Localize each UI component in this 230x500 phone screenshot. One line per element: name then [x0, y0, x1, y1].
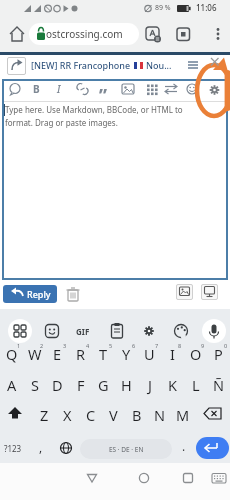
button[interactable]: K: [161, 374, 184, 395]
staticText: T: [99, 344, 108, 364]
staticText: F: [77, 375, 85, 395]
button[interactable]: M: [171, 404, 194, 425]
button[interactable]: V: [102, 404, 125, 425]
button[interactable]: [106, 320, 128, 342]
staticText: 4: [86, 342, 90, 349]
staticText: I: [170, 344, 175, 364]
staticText: GIF: [76, 326, 90, 337]
button[interactable]: D: [46, 374, 69, 395]
button[interactable]: F: [69, 374, 92, 395]
staticText: K: [168, 375, 177, 395]
staticText: R: [76, 344, 86, 364]
button[interactable]: C: [79, 404, 102, 425]
button[interactable]: Reply: [3, 285, 57, 303]
button[interactable]: [8, 319, 32, 343]
staticText: format. Drag or paste images.: [5, 117, 118, 128]
button[interactable]: [29, 23, 139, 45]
button[interactable]: [3, 404, 29, 425]
button[interactable]: [73, 81, 91, 98]
staticText: E: [53, 344, 62, 364]
button[interactable]: [205, 81, 223, 98]
staticText: L: [192, 375, 200, 395]
staticText: O: [190, 344, 202, 364]
button[interactable]: [162, 81, 180, 98]
staticText: ”: [99, 83, 108, 108]
button[interactable]: P: [207, 343, 230, 364]
button[interactable]: [177, 467, 199, 489]
button[interactable]: [202, 319, 226, 343]
button[interactable]: Ñ: [207, 374, 230, 395]
staticText: Z: [40, 405, 49, 425]
staticText: ?123: [4, 443, 22, 454]
button[interactable]: [119, 81, 137, 98]
button[interactable]: [201, 404, 227, 425]
button[interactable]: Q: [0, 343, 23, 364]
button[interactable]: [50, 81, 68, 98]
button[interactable]: [81, 467, 103, 489]
button[interactable]: [56, 437, 76, 459]
staticText: 9: [201, 342, 205, 349]
staticText: A: [7, 375, 17, 395]
staticText: N: [154, 405, 166, 425]
button[interactable]: [196, 437, 229, 459]
button[interactable]: [201, 284, 218, 300]
staticText: H: [121, 375, 132, 395]
staticText: B: [132, 405, 142, 425]
staticText: M: [176, 405, 190, 425]
staticText: C: [86, 405, 96, 425]
staticText: 0: [224, 342, 228, 349]
button[interactable]: [7, 57, 26, 75]
button[interactable]: [28, 81, 46, 98]
button[interactable]: Y: [115, 343, 138, 364]
button[interactable]: [183, 81, 201, 98]
staticText: 5: [109, 342, 113, 349]
staticText: S: [31, 375, 39, 395]
button[interactable]: H: [115, 374, 138, 395]
staticText: 1: [17, 342, 21, 349]
staticText: J: [148, 375, 152, 395]
button[interactable]: [64, 285, 82, 303]
button[interactable]: G: [92, 374, 115, 395]
button[interactable]: W: [23, 343, 46, 364]
staticText: [NEW] RR Francophone: [31, 59, 131, 71]
button[interactable]: [208, 467, 230, 489]
button[interactable]: N: [148, 404, 171, 425]
button[interactable]: U: [138, 343, 161, 364]
button[interactable]: O: [184, 343, 207, 364]
staticText: Q: [6, 344, 18, 364]
staticText: Reply: [27, 288, 51, 300]
staticText: B: [33, 82, 40, 96]
button[interactable]: B: [125, 404, 148, 425]
button[interactable]: [6, 81, 24, 98]
button[interactable]: J: [138, 374, 161, 395]
button[interactable]: ,: [32, 437, 52, 459]
button[interactable]: T: [92, 343, 115, 364]
button[interactable]: .: [176, 437, 194, 459]
button[interactable]: X: [56, 404, 79, 425]
staticText: U: [144, 344, 155, 364]
staticText: 11:06: [196, 2, 217, 13]
staticText: 7: [155, 342, 159, 349]
button[interactable]: [133, 467, 155, 489]
button[interactable]: I: [161, 343, 184, 364]
button[interactable]: ES · DE · EN: [80, 439, 172, 459]
button[interactable]: L: [184, 374, 207, 395]
button[interactable]: ?123: [1, 437, 27, 459]
button[interactable]: S: [23, 374, 46, 395]
button[interactable]: R: [69, 343, 92, 364]
button[interactable]: A: [0, 374, 23, 395]
button[interactable]: [41, 320, 63, 342]
button[interactable]: E: [46, 343, 69, 364]
button[interactable]: [95, 81, 113, 98]
button[interactable]: [138, 320, 160, 342]
staticText: P: [214, 344, 223, 364]
button[interactable]: [143, 81, 161, 98]
staticText: V: [109, 405, 118, 425]
button[interactable]: [176, 284, 193, 300]
staticText: Nou...: [146, 59, 172, 71]
button[interactable]: [73, 320, 95, 342]
staticText: W: [28, 344, 42, 364]
button[interactable]: Z: [33, 404, 56, 425]
staticText: 8: [178, 342, 182, 349]
button[interactable]: [170, 320, 192, 342]
